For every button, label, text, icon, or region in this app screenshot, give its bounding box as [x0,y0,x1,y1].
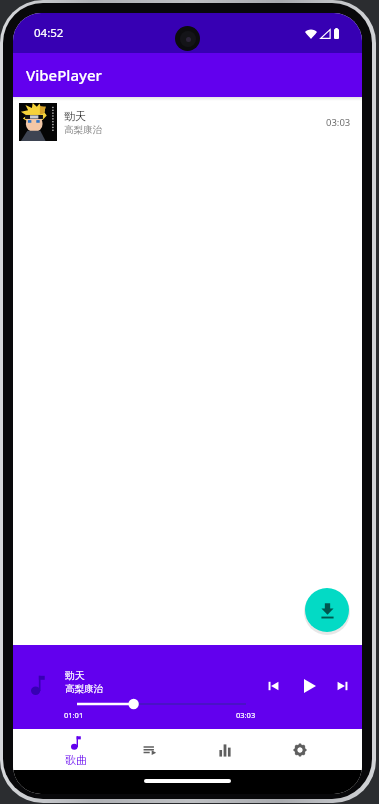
button[interactable]: Next track [328,671,357,700]
button[interactable]: Equalizer [187,729,262,770]
button[interactable]: Previous track [259,671,288,700]
staticText: 高梨康治 [64,124,102,136]
staticText: 勁天 [65,669,85,682]
button[interactable]: Download [305,588,349,632]
button[interactable]: Playlist [113,729,187,770]
staticText: VibePlayer [26,65,102,85]
staticText: 03:03 [236,710,256,720]
staticText: 01:01 [64,710,84,720]
button[interactable]: Play [295,671,324,700]
staticText: 高梨康治 [65,683,103,695]
staticText: 歌曲 [65,753,87,767]
staticText: 04:52 [34,25,64,41]
button[interactable]: 歌曲 [39,729,113,770]
button[interactable]: Settings [262,729,337,770]
button[interactable]: 勁天 [13,100,362,144]
staticText: 03:03 [326,116,351,129]
staticText: 勁天 [64,109,86,123]
